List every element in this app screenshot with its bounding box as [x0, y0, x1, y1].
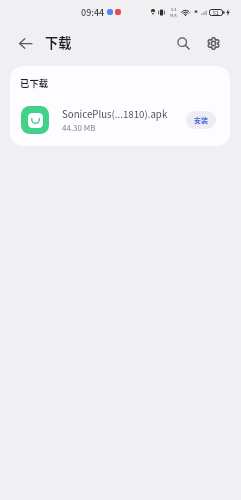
button[interactable]: Settings — [199, 29, 228, 58]
staticText: 已下载 — [20, 76, 49, 90]
staticText: 51 — [213, 9, 219, 16]
staticText: 5.4 — [171, 6, 177, 12]
staticText: 下载 — [45, 33, 72, 52]
staticText: M/s — [170, 12, 177, 18]
staticText: 09:44 — [81, 6, 105, 19]
button[interactable]: Back — [11, 29, 40, 58]
staticText: 安装 — [194, 115, 208, 125]
staticText: SonicePlus(...1810).apk — [62, 107, 168, 121]
button[interactable]: 安装 — [186, 111, 216, 129]
button[interactable]: Search — [169, 29, 198, 58]
staticText: 44.30 MB — [62, 122, 96, 134]
button[interactable]: SonicePlus(...1810).apk — [10, 101, 230, 139]
